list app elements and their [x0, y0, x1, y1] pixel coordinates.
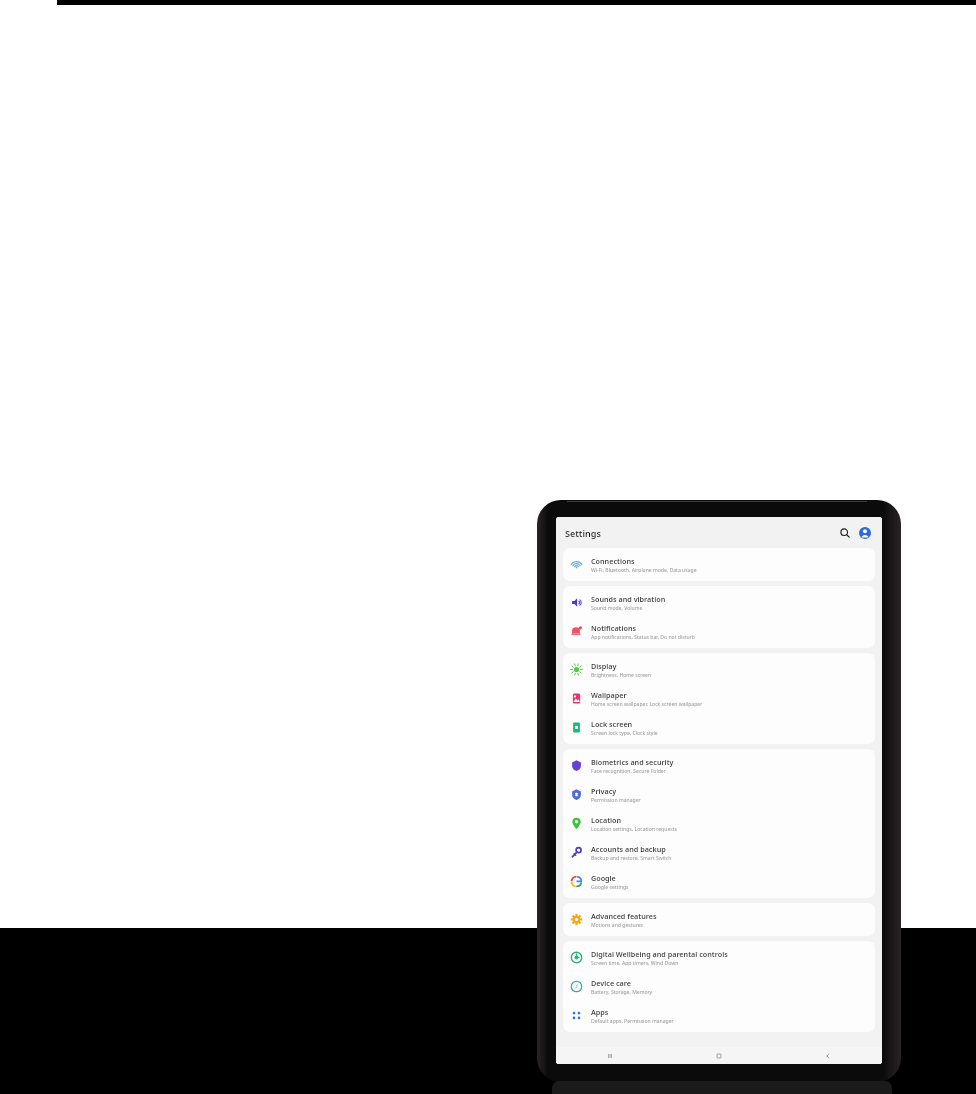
button[interactable]: Recents: [556, 1047, 664, 1064]
staticText: Screen time, App timers, Wind Down: [591, 960, 679, 967]
staticText: Screen lock type, Clock style: [591, 730, 658, 737]
staticText: Wi-Fi, Bluetooth, Airplane mode, Data us…: [591, 567, 697, 574]
staticText: Default apps, Permission manager: [591, 1018, 674, 1025]
staticText: Apps: [591, 1007, 609, 1017]
staticText: Accounts and backup: [591, 844, 666, 854]
staticText: Privacy: [591, 786, 617, 796]
staticText: Lock screen: [591, 719, 633, 729]
staticText: Wallpaper: [591, 690, 627, 700]
staticText: Face recognition, Secure Folder: [591, 768, 666, 775]
button[interactable]: Privacy: [563, 780, 875, 809]
staticText: Battery, Storage, Memory: [591, 989, 653, 996]
button[interactable]: Google: [563, 867, 875, 896]
staticText: Display: [591, 661, 617, 671]
button[interactable]: Lock screen: [563, 713, 875, 742]
staticText: Digital Wellbeing and parental controls: [591, 949, 728, 959]
button[interactable]: Accounts and backup: [563, 838, 875, 867]
button[interactable]: Location: [563, 809, 875, 838]
button[interactable]: Notifications: [563, 617, 875, 646]
button[interactable]: Back: [773, 1047, 882, 1064]
staticText: Sound mode, Volume: [591, 605, 643, 612]
staticText: Advanced features: [591, 911, 657, 921]
button[interactable]: Biometrics and security: [563, 751, 875, 780]
staticText: Permission manager: [591, 797, 641, 804]
staticText: Location settings, Location requests: [591, 826, 677, 833]
staticText: Location: [591, 815, 622, 825]
button[interactable]: Digital Wellbeing and parental controls: [563, 943, 875, 972]
button[interactable]: Home: [664, 1047, 773, 1064]
staticText: Settings: [565, 527, 601, 539]
button[interactable]: Wallpaper: [563, 684, 875, 713]
staticText: Home screen wallpaper, Lock screen wallp…: [591, 701, 703, 708]
staticText: Google settings: [591, 884, 629, 891]
staticText: App notifications, Status bar, Do not di…: [591, 634, 695, 641]
staticText: Backup and restore, Smart Switch: [591, 855, 672, 862]
button[interactable]: Display: [563, 655, 875, 684]
button[interactable]: Search: [837, 525, 853, 541]
button[interactable]: Sounds and vibration: [563, 588, 875, 617]
staticText: Brightness, Home screen: [591, 672, 652, 679]
staticText: Notifications: [591, 623, 637, 633]
staticText: Sounds and vibration: [591, 594, 666, 604]
button[interactable]: Connections: [563, 550, 875, 579]
button[interactable]: Advanced features: [563, 905, 875, 934]
button[interactable]: Apps: [563, 1001, 875, 1030]
staticText: Connections: [591, 556, 635, 566]
staticText: Google: [591, 873, 616, 883]
staticText: Device care: [591, 978, 631, 988]
staticText: Motions and gestures: [591, 922, 644, 929]
button[interactable]: Account: [857, 525, 873, 541]
button[interactable]: Device care: [563, 972, 875, 1001]
staticText: Biometrics and security: [591, 757, 674, 767]
